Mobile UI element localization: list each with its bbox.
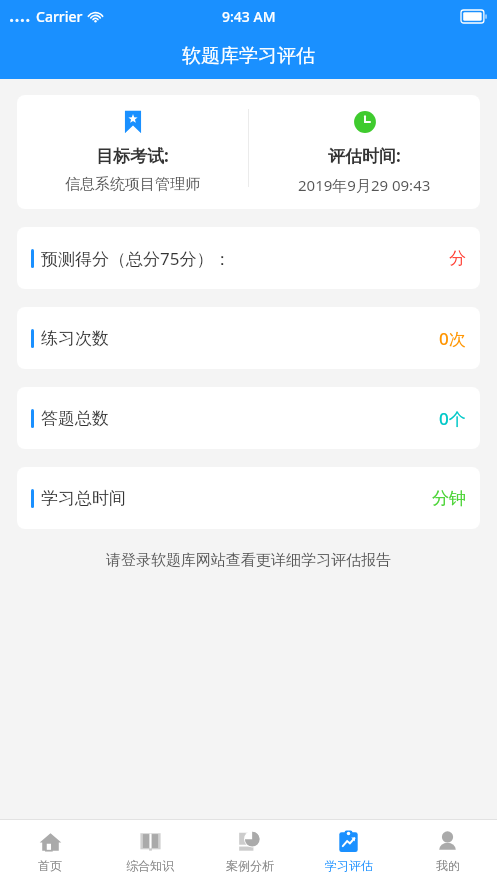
staticText: 答题总数 — [41, 408, 109, 429]
staticText: 目标考试: — [96, 144, 169, 167]
staticText: 信息系统项目管理师 — [65, 175, 200, 194]
staticText: 评估时间: — [328, 144, 401, 167]
button[interactable]: 我的 — [398, 819, 497, 883]
button[interactable]: 目标考试: — [17, 109, 248, 194]
button[interactable]: 综合知识 — [100, 819, 200, 883]
staticText: 首页 — [38, 858, 62, 873]
staticText: 案例分析 — [226, 858, 274, 873]
button[interactable]: 练习次数 — [17, 307, 480, 369]
staticText: 练习次数 — [41, 328, 109, 349]
button[interactable]: 学习总时间 — [17, 467, 480, 529]
staticText: 请登录软题库网站查看更详细学习评估报告 — [0, 551, 497, 570]
button[interactable]: 评估时间: — [249, 109, 480, 195]
staticText: 预测得分（总分75分）： — [41, 247, 231, 270]
staticText: 9:43 AM — [222, 7, 276, 26]
staticText: 分钟 — [432, 488, 466, 509]
staticText: 学习评估 — [325, 858, 373, 873]
staticText: 0个 — [439, 407, 466, 430]
button[interactable]: 案例分析 — [200, 819, 299, 883]
staticText: 软题库学习评估 — [182, 44, 315, 68]
staticText: 分 — [449, 248, 466, 269]
staticText: 综合知识 — [126, 858, 174, 873]
staticText: 学习总时间 — [41, 488, 126, 509]
button[interactable]: 答题总数 — [17, 387, 480, 449]
staticText: 我的 — [436, 858, 460, 873]
staticText: Carrier — [36, 7, 83, 26]
button[interactable]: 目标考试: — [17, 95, 480, 209]
staticText: 0次 — [439, 327, 466, 350]
button[interactable]: 预测得分（总分75分）： — [17, 227, 480, 289]
button[interactable]: 首页 — [0, 819, 100, 883]
staticText: 2019年9月29 09:43 — [298, 175, 431, 195]
button[interactable]: 学习评估 — [299, 819, 398, 883]
